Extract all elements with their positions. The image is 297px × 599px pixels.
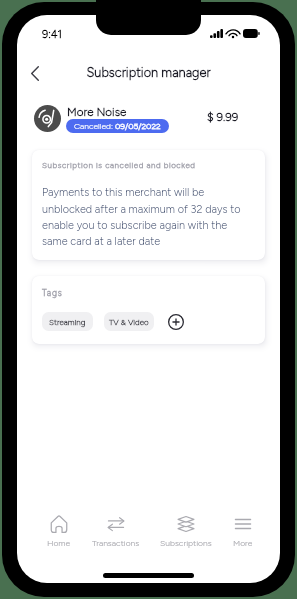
staticText: TV & Video — [109, 317, 149, 327]
staticText: Subscriptions — [160, 538, 212, 548]
button[interactable]: Add tag — [166, 312, 185, 331]
button[interactable]: Streaming — [42, 312, 93, 331]
staticText: Transactions — [92, 538, 140, 548]
button[interactable]: More — [233, 515, 253, 548]
staticText: 9:41 — [42, 28, 63, 41]
staticText: More — [233, 538, 253, 548]
staticText: Payments to this merchant will be unbloc… — [42, 186, 252, 248]
button[interactable]: Back — [20, 59, 50, 87]
button[interactable]: Subscriptions — [160, 515, 212, 548]
button[interactable]: Home — [47, 515, 71, 548]
staticText: More Noise — [67, 105, 127, 119]
button[interactable]: TV & Video — [104, 312, 154, 331]
staticText: Cancelled: 09/05/2022 — [74, 121, 161, 131]
button[interactable]: Transactions — [92, 515, 140, 548]
staticText: Subscription manager — [17, 65, 280, 80]
staticText: Subscription is cancelled and blocked — [42, 160, 196, 170]
staticText: Home — [47, 538, 71, 548]
staticText: $ 9.99 — [207, 110, 239, 124]
staticText: Streaming — [49, 317, 86, 327]
button[interactable]: Subscription is cancelled and blocked — [32, 150, 265, 260]
staticText: Tags — [42, 288, 63, 298]
